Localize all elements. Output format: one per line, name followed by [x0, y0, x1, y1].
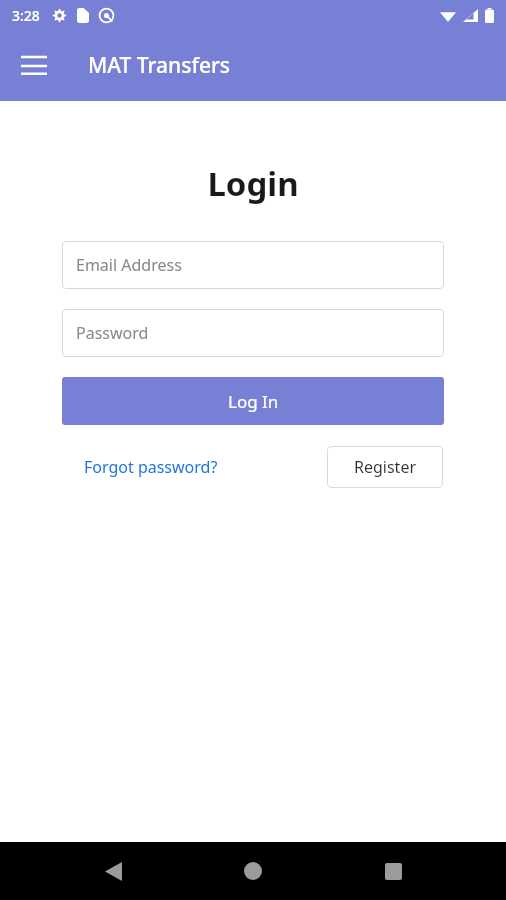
- staticText: Email Address: [76, 254, 182, 276]
- button[interactable]: Password: [62, 309, 444, 357]
- staticText: Register: [354, 456, 417, 478]
- button[interactable]: Email Address: [62, 241, 444, 289]
- staticText: Forgot password?: [84, 456, 218, 478]
- staticText: Login: [207, 161, 299, 206]
- staticText: MAT Transfers: [88, 51, 231, 80]
- staticText: Log In: [228, 390, 279, 413]
- button[interactable]: Forgot password?: [80, 450, 222, 484]
- button[interactable]: Back: [86, 844, 140, 898]
- button[interactable]: Home: [226, 844, 280, 898]
- staticText: 3:28: [12, 6, 40, 25]
- button[interactable]: Register: [327, 446, 443, 488]
- button[interactable]: Recent apps: [366, 844, 420, 898]
- staticText: Password: [76, 322, 149, 344]
- button[interactable]: Log In: [62, 377, 444, 425]
- button[interactable]: Open navigation menu: [10, 42, 58, 90]
